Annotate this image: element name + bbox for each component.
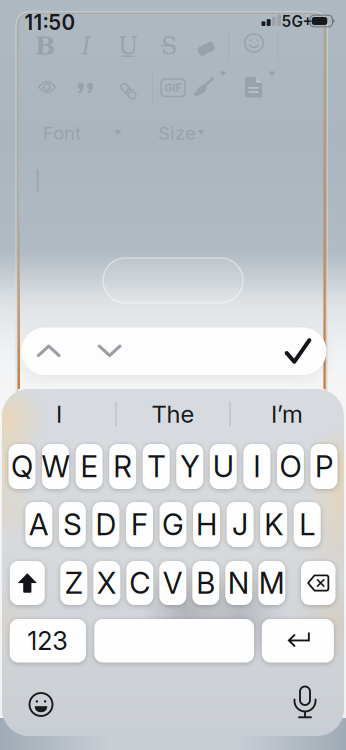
button[interactable]: I (243, 444, 270, 489)
button[interactable]: B (192, 561, 219, 605)
button[interactable]: Done (285, 338, 311, 363)
staticText: R (113, 449, 132, 484)
button[interactable]: S (59, 502, 86, 547)
staticText: K (264, 507, 283, 542)
button[interactable]: Clear formatting (193, 34, 215, 54)
button[interactable]: T (143, 444, 170, 489)
button[interactable]: D (92, 502, 119, 547)
button[interactable]: Previous field (37, 344, 61, 357)
staticText: D (95, 507, 116, 542)
staticText: U (213, 449, 234, 484)
button[interactable]: M (258, 561, 285, 605)
staticText: J (232, 507, 248, 542)
staticText: M (259, 565, 285, 601)
staticText: T (147, 449, 165, 484)
button[interactable]: U (210, 444, 237, 489)
staticText: 123 (27, 625, 68, 656)
button[interactable]: Quote (77, 80, 93, 94)
staticText: G (162, 507, 184, 542)
staticText: Font (43, 122, 81, 144)
button[interactable]: N (225, 561, 252, 605)
staticText: O (279, 449, 301, 484)
staticText: Size (158, 122, 196, 144)
button[interactable]: Text color (193, 71, 227, 98)
button[interactable]: K (260, 502, 287, 547)
staticText: GIF (164, 81, 181, 94)
button[interactable]: Q (8, 444, 35, 489)
button[interactable]: Next field (98, 344, 122, 357)
button[interactable]: L (294, 502, 321, 547)
button[interactable]: Templates (245, 71, 276, 97)
staticText: I (81, 32, 90, 60)
staticText: I (253, 449, 260, 484)
button[interactable]: H (193, 502, 220, 547)
button[interactable]: R (109, 444, 136, 489)
button[interactable]: Preview (38, 80, 56, 94)
staticText: X (97, 565, 117, 601)
button[interactable]: Italic (74, 34, 98, 58)
button[interactable]: V (159, 561, 186, 605)
button[interactable]: Size (157, 124, 205, 142)
staticText: E (81, 449, 98, 484)
staticText: 11:50 (24, 10, 75, 35)
button[interactable]: P (310, 444, 337, 489)
staticText: The (151, 399, 194, 428)
staticText: 5G+ (281, 12, 312, 31)
staticText: C (129, 565, 150, 601)
button[interactable]: Y (176, 444, 203, 489)
button[interactable]: E (76, 444, 103, 489)
button[interactable]: Z (60, 561, 87, 605)
staticText: B (35, 32, 55, 60)
staticText: S (63, 507, 81, 542)
staticText: I (56, 399, 62, 428)
staticText: H (196, 507, 217, 542)
button[interactable]: I (4, 400, 114, 428)
staticText: W (41, 449, 69, 484)
button[interactable]: Emoji (244, 33, 263, 52)
button[interactable]: Bold (33, 34, 57, 58)
button[interactable]: The (118, 400, 228, 428)
button[interactable]: Space (94, 619, 254, 662)
button[interactable]: X (93, 561, 120, 605)
button[interactable]: J (227, 502, 254, 547)
staticText: V (163, 565, 183, 601)
staticText: L (299, 507, 315, 542)
button[interactable]: A (25, 502, 52, 547)
button[interactable]: Underline (116, 34, 140, 58)
button[interactable]: O (277, 444, 304, 489)
button[interactable]: F (126, 502, 153, 547)
staticText: Y (180, 449, 199, 484)
staticText: I’m (271, 399, 303, 428)
button[interactable]: Insert link (116, 79, 134, 94)
button[interactable]: Numbers (10, 619, 86, 662)
staticText: A (29, 507, 49, 542)
button[interactable]: Shift (10, 561, 45, 605)
button[interactable]: W (42, 444, 69, 489)
staticText: F (131, 507, 148, 542)
staticText: B (196, 565, 215, 601)
button[interactable]: Emoji (29, 693, 52, 716)
button[interactable]: I’m (232, 400, 342, 428)
staticText: Q (11, 449, 33, 484)
button[interactable]: Insert GIF (161, 79, 185, 96)
button[interactable]: Font (41, 124, 122, 142)
button[interactable]: Return (262, 619, 334, 662)
staticText: S (161, 32, 177, 60)
staticText: P (315, 449, 333, 484)
button[interactable]: Dictation (293, 686, 316, 719)
staticText: U (118, 32, 138, 60)
button[interactable]: Strikethrough (157, 34, 181, 58)
button[interactable]: G (159, 502, 186, 547)
staticText: Z (65, 565, 83, 601)
staticText: N (228, 565, 250, 601)
button[interactable]: Delete (301, 561, 335, 605)
button[interactable]: C (126, 561, 153, 605)
